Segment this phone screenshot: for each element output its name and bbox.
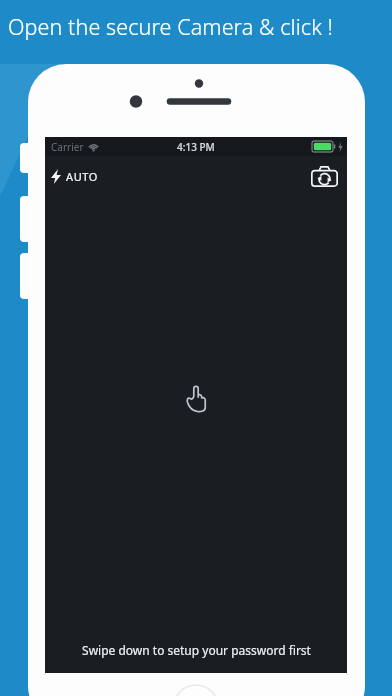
button[interactable]: Swipe down to setup your password first [45, 627, 347, 673]
staticText: Carrier [51, 140, 84, 154]
button[interactable]: AUTO [51, 169, 98, 184]
button[interactable]: Open the secure Camera & click ! [8, 12, 333, 41]
staticText: Swipe down to setup your password first [82, 642, 311, 658]
button[interactable]: Tap [185, 385, 207, 412]
button[interactable]: Switch camera [309, 161, 339, 191]
staticText: AUTO [66, 169, 98, 184]
staticText: 4:13 PM [177, 140, 215, 154]
